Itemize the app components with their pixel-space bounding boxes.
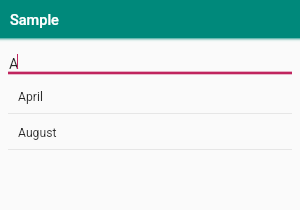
button[interactable]: August [0,114,300,149]
staticText: A [9,56,19,73]
button[interactable]: April [0,78,300,113]
staticText: August [18,126,57,140]
staticText: Sample [10,12,59,29]
button[interactable]: Sample [0,0,300,38]
staticText: April [18,90,43,104]
button[interactable]: Search field [8,52,292,73]
